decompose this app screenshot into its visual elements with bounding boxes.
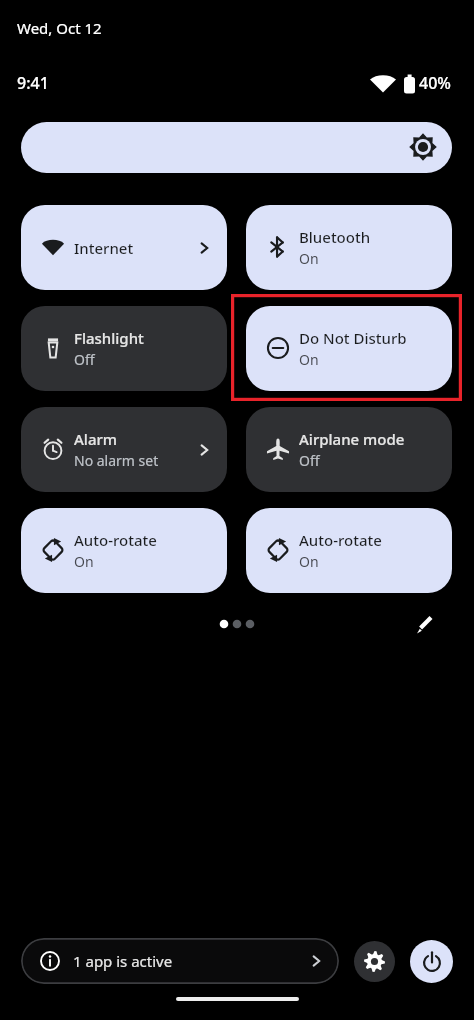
button[interactable]: Flashlight [21,306,227,391]
staticText: Airplane mode [299,429,405,449]
button[interactable]: Do Not Disturb [246,306,452,391]
button[interactable]: Brightness [21,122,452,173]
staticText: On [299,350,319,369]
staticText: Internet [74,238,134,258]
staticText: Do Not Disturb [299,328,407,348]
staticText: 1 app is active [73,951,173,971]
button[interactable]: Internet [21,205,227,290]
button[interactable]: Bluetooth [246,205,452,290]
button[interactable]: Alarm [21,407,227,492]
staticText: On [299,249,319,268]
staticText: Bluetooth [299,227,371,247]
button[interactable]: Edit tiles [406,606,444,644]
staticText: Auto-rotate [74,530,157,550]
staticText: Alarm [74,429,118,449]
staticText: On [74,552,94,571]
staticText: Auto-rotate [299,530,382,550]
button[interactable]: 1 app is active [21,938,339,984]
button[interactable]: Auto-rotate [246,508,452,593]
button[interactable]: Power [410,940,453,983]
staticText: Wed, Oct 12 [17,18,102,38]
staticText: 40% [419,72,451,94]
staticText: Off [299,451,320,470]
staticText: 9:41 [17,72,49,94]
button[interactable]: Airplane mode [246,407,452,492]
staticText: On [299,552,319,571]
button[interactable]: Settings [354,941,395,982]
staticText: Off [74,350,95,369]
staticText: No alarm set [74,451,159,470]
button[interactable]: Auto-rotate [21,508,227,593]
staticText: Flashlight [74,328,144,348]
